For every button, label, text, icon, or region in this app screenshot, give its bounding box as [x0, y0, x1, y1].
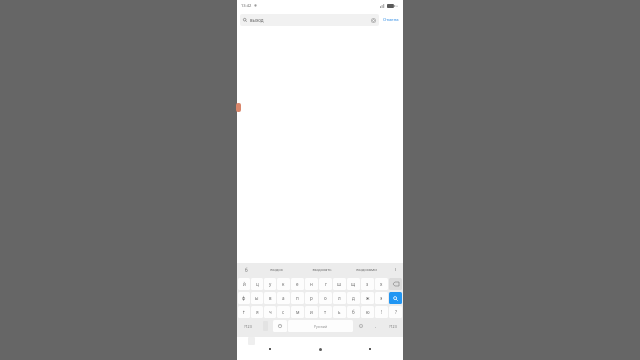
- button[interactable]: а: [277, 292, 290, 304]
- button[interactable]: ?123: [384, 320, 402, 332]
- button[interactable]: з: [361, 278, 374, 290]
- button[interactable]: у: [264, 278, 276, 290]
- staticText: ↑: [242, 310, 246, 315]
- staticText: я: [256, 309, 259, 315]
- button[interactable]: выдохать: [299, 263, 344, 276]
- button[interactable]: т: [319, 306, 332, 318]
- staticText: ?123: [389, 324, 397, 329]
- staticText: л: [338, 295, 341, 301]
- button[interactable]: Последние приложения: [365, 344, 375, 354]
- staticText: ц: [256, 281, 259, 287]
- button[interactable]: Отмена: [382, 15, 400, 25]
- staticText: +: [396, 3, 399, 8]
- button[interactable]: п: [291, 292, 304, 304]
- staticText: е: [296, 281, 299, 287]
- staticText: б: [352, 309, 355, 315]
- button[interactable]: Эмодзи: [239, 263, 253, 276]
- staticText: й: [243, 281, 246, 287]
- staticText: б: [245, 267, 248, 273]
- button[interactable]: ↑: [238, 306, 250, 318]
- button[interactable]: с: [277, 306, 290, 318]
- button[interactable]: э: [375, 292, 388, 304]
- button[interactable]: Очистить: [370, 17, 376, 23]
- button[interactable]: ь: [333, 306, 346, 318]
- staticText: выдохать: [312, 267, 332, 273]
- staticText: э: [380, 295, 383, 301]
- button[interactable]: г: [319, 278, 332, 290]
- button[interactable]: в: [264, 292, 276, 304]
- staticText: щ: [351, 281, 356, 287]
- staticText: ф: [242, 295, 246, 301]
- button[interactable]: и: [305, 306, 318, 318]
- button[interactable]: выдохами: [344, 263, 389, 276]
- staticText: ш: [337, 281, 342, 287]
- button[interactable]: л: [333, 292, 346, 304]
- button[interactable]: щ: [347, 278, 360, 290]
- button[interactable]: ы: [251, 292, 263, 304]
- staticText: Русский: [314, 324, 327, 329]
- button[interactable]: выдох: [253, 263, 299, 276]
- button[interactable]: х: [375, 278, 388, 290]
- button[interactable]: я: [251, 306, 263, 318]
- staticText: Отмена: [383, 17, 399, 23]
- button[interactable]: Настройки: [354, 320, 368, 332]
- button[interactable]: б: [347, 306, 360, 318]
- staticText: р: [310, 295, 313, 301]
- staticText: х: [380, 281, 383, 287]
- staticText: выход: [250, 17, 264, 23]
- staticText: !: [381, 309, 383, 315]
- staticText: ?123: [244, 324, 252, 329]
- staticText: о: [324, 295, 327, 301]
- button[interactable]: выход: [240, 14, 379, 26]
- button[interactable]: о: [319, 292, 332, 304]
- button[interactable]: Назад: [265, 344, 275, 354]
- staticText: .: [375, 323, 377, 329]
- staticText: н: [310, 281, 313, 287]
- staticText: выдох: [270, 267, 283, 273]
- button[interactable]: е: [291, 278, 304, 290]
- staticText: п: [296, 295, 299, 301]
- button[interactable]: ю: [361, 306, 374, 318]
- button[interactable]: ?123: [238, 320, 257, 332]
- button[interactable]: ?: [389, 306, 402, 318]
- staticText: д: [352, 295, 355, 301]
- staticText: м: [296, 309, 300, 315]
- button[interactable]: Смайлики: [273, 320, 287, 332]
- staticText: к: [282, 281, 285, 287]
- button[interactable]: Поиск: [389, 292, 402, 304]
- staticText: з: [366, 281, 369, 287]
- button[interactable]: ч: [264, 306, 276, 318]
- button[interactable]: Ещё: [389, 263, 401, 276]
- button[interactable]: д: [347, 292, 360, 304]
- staticText: 13:42: [241, 3, 252, 8]
- button[interactable]: ф: [238, 292, 250, 304]
- staticText: с: [282, 309, 285, 315]
- button[interactable]: й: [238, 278, 250, 290]
- button[interactable]: н: [305, 278, 318, 290]
- staticText: ?: [395, 309, 397, 315]
- button[interactable]: р: [305, 292, 318, 304]
- button[interactable]: Запятая: [258, 320, 272, 332]
- button[interactable]: ш: [333, 278, 346, 290]
- staticText: ч: [269, 309, 272, 315]
- button[interactable]: !: [375, 306, 388, 318]
- staticText: ы: [255, 295, 259, 301]
- button[interactable]: Русский: [288, 320, 353, 332]
- staticText: и: [310, 309, 313, 315]
- button[interactable]: Главный экран: [315, 344, 325, 354]
- staticText: в: [269, 295, 272, 301]
- staticText: ж: [366, 295, 370, 301]
- staticText: г: [325, 281, 327, 287]
- staticText: т: [324, 309, 327, 315]
- staticText: ю: [366, 309, 370, 315]
- button[interactable]: к: [277, 278, 290, 290]
- staticText: у: [269, 281, 272, 287]
- button[interactable]: ж: [361, 292, 374, 304]
- staticText: ь: [338, 309, 341, 315]
- button[interactable]: Удалить: [389, 278, 402, 290]
- button[interactable]: м: [291, 306, 304, 318]
- staticText: а: [282, 295, 285, 301]
- staticText: выдохами: [356, 267, 377, 273]
- button[interactable]: ц: [251, 278, 263, 290]
